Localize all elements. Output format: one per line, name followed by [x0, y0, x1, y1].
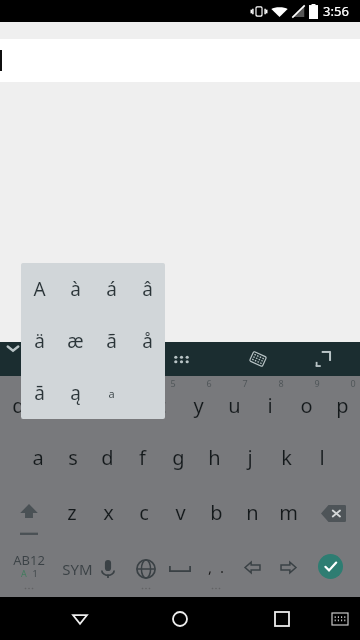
button[interactable]: c	[126, 486, 162, 541]
button[interactable]: Shift	[0, 486, 58, 541]
button[interactable]: a	[93, 367, 129, 419]
staticText: d	[101, 444, 114, 471]
button[interactable]: f	[125, 431, 160, 486]
staticText: 7	[242, 377, 248, 389]
button[interactable]: , .	[198, 541, 234, 597]
button[interactable]: More options	[161, 342, 201, 376]
staticText: p	[336, 392, 349, 419]
staticText: f	[139, 444, 146, 471]
staticText: q	[12, 392, 25, 419]
button[interactable]: Enter	[306, 541, 360, 597]
button[interactable]: Move cursor right	[270, 541, 306, 597]
button[interactable]: A	[21, 263, 57, 315]
staticText: á	[106, 276, 117, 302]
button[interactable]: Hide keyboard	[0, 342, 26, 376]
button[interactable]: t	[144, 376, 180, 431]
button[interactable]: Voice input	[90, 541, 126, 597]
button[interactable]: k	[268, 431, 304, 486]
staticText: a	[108, 386, 115, 401]
staticText: ą	[70, 380, 81, 406]
staticText: a	[32, 444, 44, 471]
staticText: 6	[206, 377, 212, 389]
button[interactable]: s	[55, 431, 90, 486]
staticText: 0	[350, 377, 356, 389]
button[interactable]: Back	[50, 597, 110, 640]
button[interactable]: a	[20, 431, 55, 486]
staticText: i	[267, 392, 273, 419]
staticText: u	[228, 392, 241, 419]
button[interactable]: Space	[162, 541, 198, 597]
button[interactable]: e	[72, 376, 108, 431]
staticText: g	[172, 444, 185, 471]
staticText: b	[210, 499, 223, 526]
staticText: , .	[208, 557, 224, 577]
button[interactable]: d	[90, 431, 125, 486]
button[interactable]: l	[304, 431, 340, 486]
button[interactable]: æ	[57, 315, 93, 367]
button[interactable]: ã	[93, 315, 129, 367]
button[interactable]: r	[108, 376, 144, 431]
button[interactable]: Change language	[128, 541, 164, 597]
staticText: y	[193, 392, 204, 419]
button[interactable]: Switch input method	[320, 597, 360, 640]
button[interactable]: à	[57, 263, 93, 315]
button[interactable]: Resize keyboard	[300, 342, 346, 376]
button[interactable]: z	[54, 486, 90, 541]
button[interactable]: Switch keyboard layout	[235, 342, 281, 376]
button[interactable]: Recent apps	[252, 597, 312, 640]
button[interactable]: q	[0, 376, 36, 431]
staticText: n	[246, 499, 259, 526]
button[interactable]: Backspace	[306, 486, 360, 541]
staticText: s	[68, 444, 78, 471]
button[interactable]: å	[129, 315, 165, 367]
button[interactable]: j	[232, 431, 268, 486]
button[interactable]: AB12	[0, 541, 58, 597]
button[interactable]: m	[270, 486, 306, 541]
button[interactable]: ā	[21, 367, 57, 419]
button[interactable]: Home	[150, 597, 210, 640]
button[interactable]: g	[160, 431, 196, 486]
staticText: m	[279, 499, 298, 526]
button[interactable]: x	[90, 486, 126, 541]
staticText: z	[67, 499, 77, 526]
button[interactable]: p	[324, 376, 360, 431]
staticText: o	[300, 392, 313, 419]
staticText: ã	[106, 328, 117, 354]
button[interactable]: v	[162, 486, 198, 541]
button[interactable]: n	[234, 486, 270, 541]
button[interactable]: b	[198, 486, 234, 541]
button[interactable]: ä	[21, 315, 57, 367]
staticText: 9	[314, 377, 320, 389]
button[interactable]: ą	[57, 367, 93, 419]
staticText: c	[139, 499, 149, 526]
staticText: AB12	[13, 551, 45, 569]
button[interactable]: h	[196, 431, 232, 486]
staticText: å	[142, 328, 153, 354]
button[interactable]: o	[288, 376, 324, 431]
staticText: ä	[34, 328, 45, 354]
staticText: k	[281, 444, 292, 471]
button[interactable]: i	[252, 376, 288, 431]
staticText: à	[70, 276, 81, 302]
button[interactable]: y	[180, 376, 216, 431]
staticText: SYM	[62, 559, 93, 579]
staticText: 8	[278, 377, 284, 389]
button[interactable]: SYM	[56, 541, 98, 597]
staticText: 3:56	[323, 2, 349, 20]
button[interactable]: Move cursor left	[234, 541, 270, 597]
button[interactable]: w	[36, 376, 72, 431]
button[interactable]: u	[216, 376, 252, 431]
staticText: x	[103, 499, 114, 526]
staticText: j	[247, 444, 253, 471]
staticText: v	[175, 499, 186, 526]
button[interactable]: á	[93, 263, 129, 315]
staticText: A	[33, 276, 46, 302]
button[interactable]: â	[129, 263, 165, 315]
